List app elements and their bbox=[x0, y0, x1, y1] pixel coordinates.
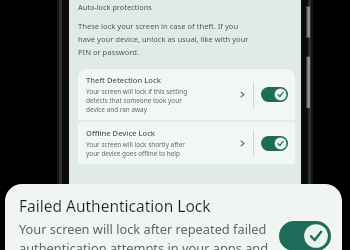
button[interactable]: Open details bbox=[237, 138, 248, 149]
staticText: detects that someone took your bbox=[86, 96, 182, 105]
staticText: Theft Detection Lock bbox=[86, 75, 161, 85]
staticText: PIN or password. bbox=[78, 47, 140, 57]
staticText: have your device, unlock as usual, like … bbox=[78, 34, 249, 44]
staticText: authentication attempts in your apps and bbox=[19, 239, 269, 250]
button[interactable]: Offline Device Lock toggle bbox=[261, 136, 288, 151]
staticText: Auto-lock protections bbox=[78, 2, 152, 12]
staticText: Your screen will lock if this setting bbox=[86, 87, 188, 96]
button[interactable]: Failed Authentication Lock bbox=[5, 184, 342, 250]
staticText: your device goes offline to help bbox=[86, 149, 180, 158]
button[interactable]: Failed Authentication Lock toggle bbox=[279, 221, 331, 250]
staticText: Offline Device Lock bbox=[86, 128, 156, 138]
button[interactable]: Theft Detection Lock bbox=[78, 69, 295, 120]
button[interactable]: Theft Detection Lock toggle bbox=[261, 87, 288, 102]
button[interactable]: Open details bbox=[237, 89, 248, 100]
staticText: device and ran away bbox=[86, 105, 147, 114]
button[interactable]: Offline Device Lock bbox=[78, 122, 295, 164]
staticText: Your screen will lock after repeated fai… bbox=[19, 220, 267, 237]
staticText: Failed Authentication Lock bbox=[19, 195, 211, 216]
staticText: These lock your screen in case of theft.… bbox=[78, 21, 239, 31]
staticText: Your screen will lock shortly after bbox=[86, 140, 185, 149]
